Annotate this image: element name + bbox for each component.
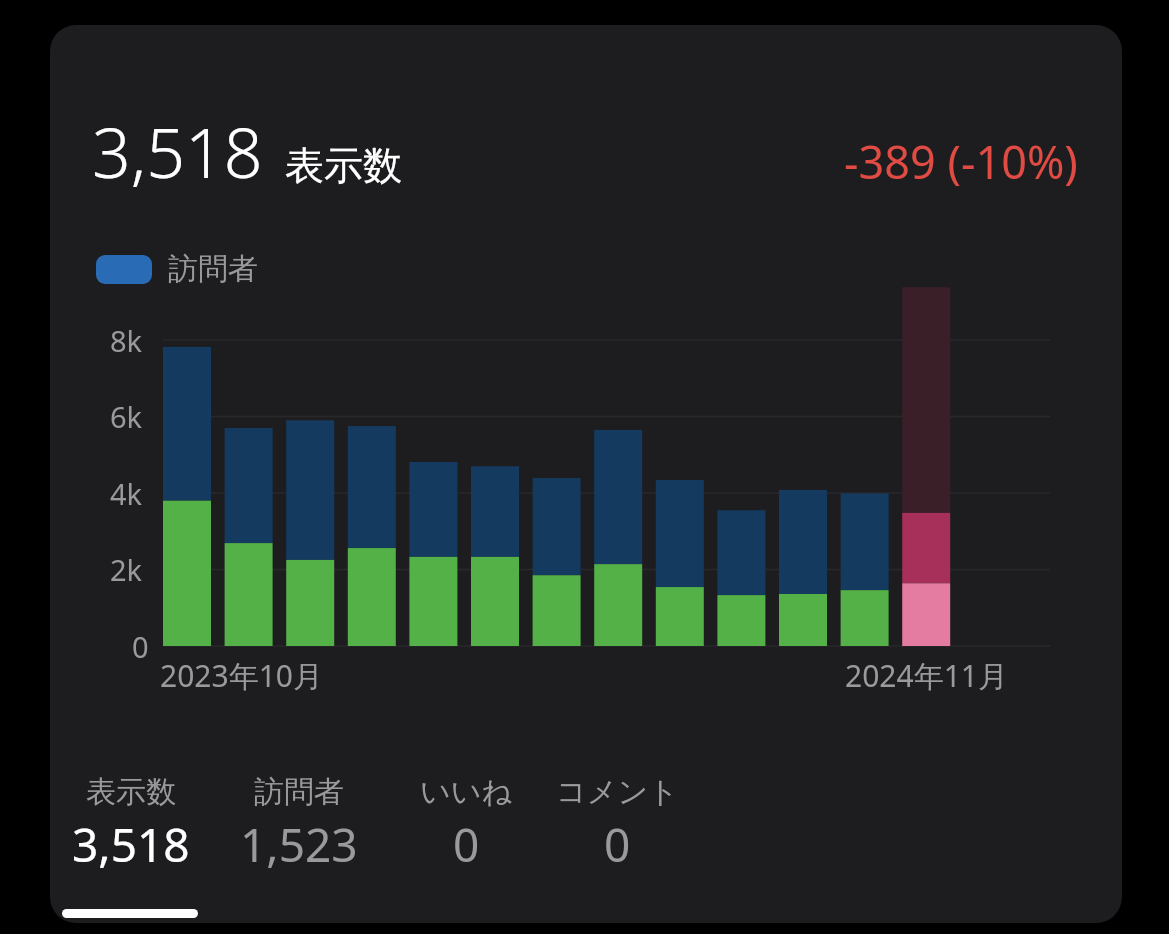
button[interactable]: コメント [556,773,679,876]
staticText: 表示数 [86,773,176,811]
staticText: 1,523 [240,813,358,876]
staticText: 2023年10月 [160,655,323,696]
other: Visitors series [96,255,152,284]
staticText: 訪問者 [254,773,344,811]
staticText: いいね [420,773,513,811]
staticText: 0 [453,813,480,876]
staticText: 8k [110,321,143,360]
staticText: 表示数 [285,141,402,190]
staticText: 訪問者 [168,250,258,288]
button[interactable]: 表示数 [72,773,190,876]
staticText: コメント [556,773,679,811]
staticText: 2024年11月 [845,655,1008,696]
staticText: 4k [110,474,143,513]
staticText: 6k [110,397,143,436]
staticText: 2k [110,550,143,589]
staticText: -389 (-10%) [844,131,1078,192]
staticText: 0 [132,627,149,666]
staticText: 3,518 [72,813,190,876]
button[interactable]: いいね [420,773,513,876]
staticText: 0 [604,813,631,876]
button[interactable]: Visitors series [96,250,258,288]
staticText: 3,518 [92,105,263,198]
button[interactable]: 訪問者 [240,773,358,876]
button[interactable]: 3,518 [50,25,1122,923]
